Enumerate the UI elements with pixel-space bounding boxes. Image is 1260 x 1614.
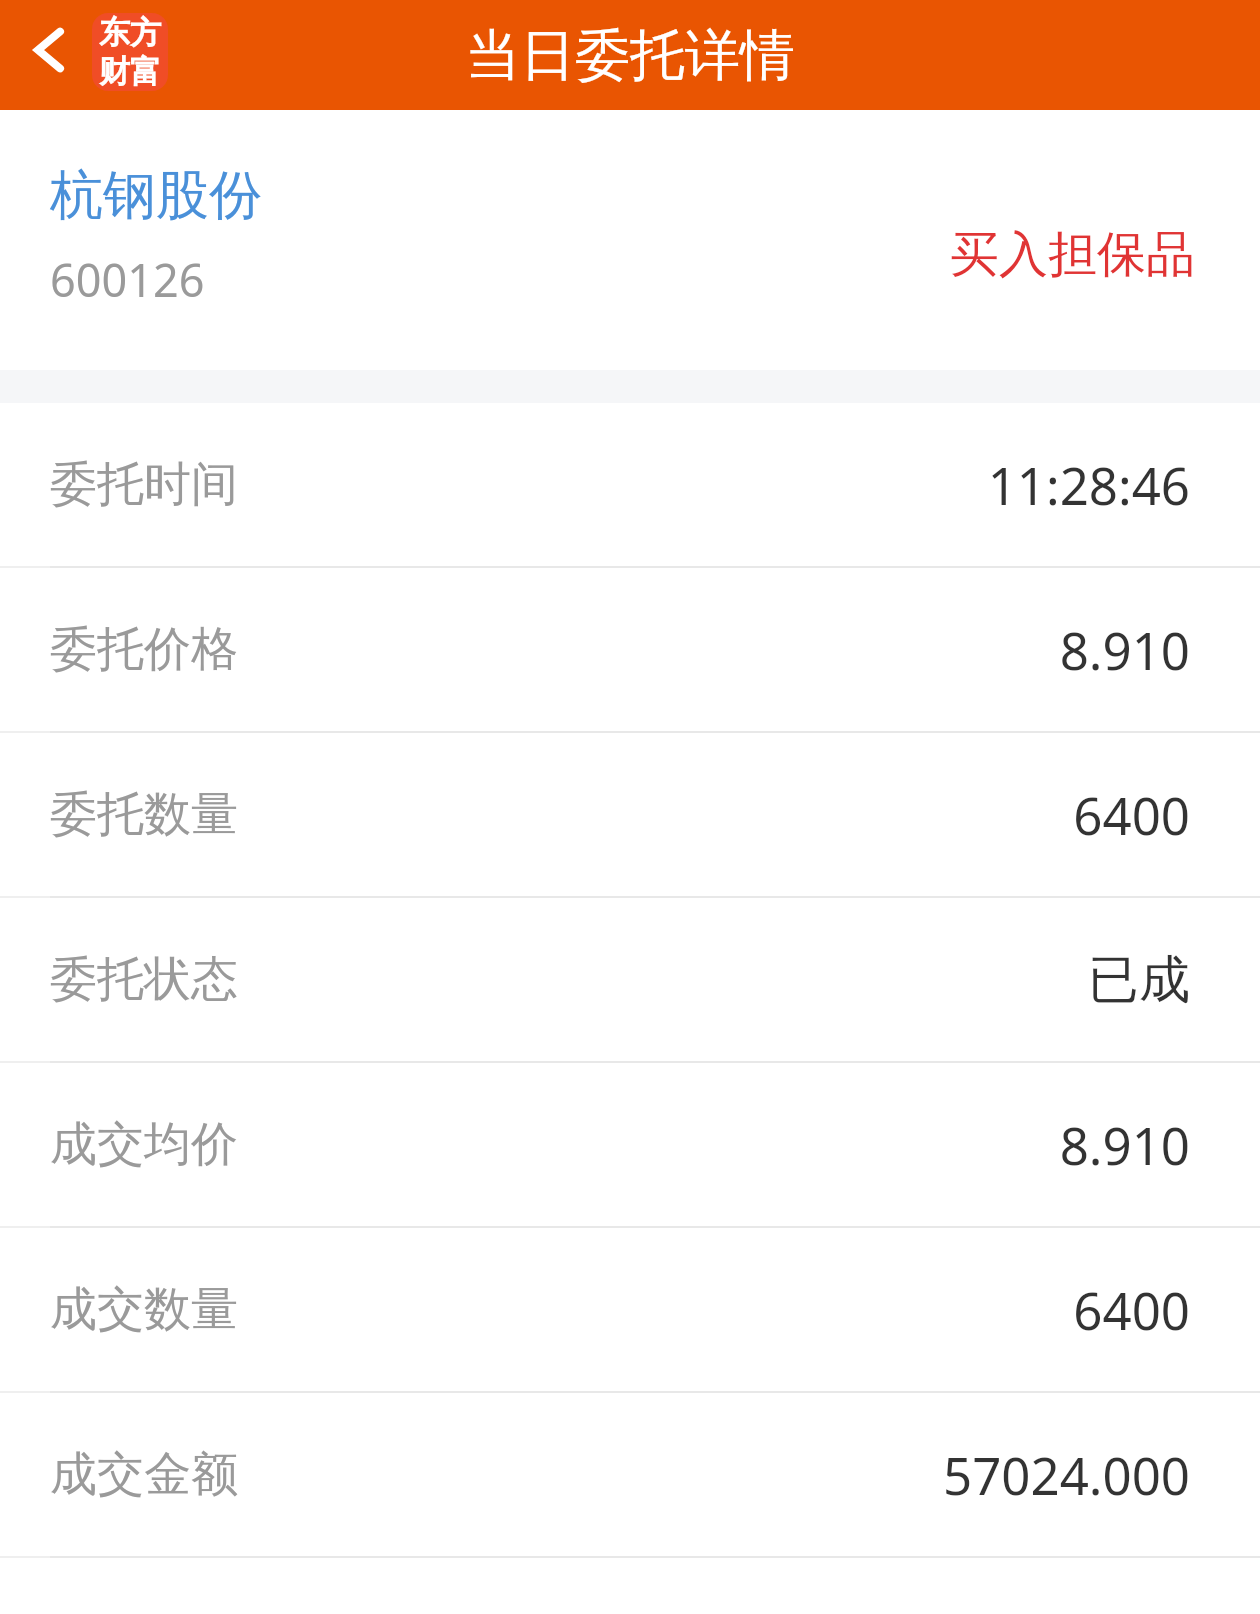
button[interactable]: 杭钢股份 <box>0 110 1260 370</box>
button[interactable]: 委托状态 <box>0 898 1260 1063</box>
button[interactable]: 成交金额 <box>0 1393 1260 1558</box>
staticText: 成交均价 <box>50 1115 238 1174</box>
button[interactable]: 委托价格 <box>0 568 1260 733</box>
button[interactable]: 委托时间 <box>0 403 1260 568</box>
staticText: 当日委托详情 <box>0 21 1260 90</box>
staticText: 600126 <box>50 249 205 310</box>
staticText: 已成 <box>1088 948 1190 1012</box>
staticText: 委托价格 <box>50 620 238 679</box>
button[interactable]: 委托数量 <box>0 733 1260 898</box>
staticText: 委托状态 <box>50 950 238 1009</box>
staticText: 财富 <box>99 52 161 91</box>
staticText: 6400 <box>1073 780 1190 849</box>
button[interactable]: 成交数量 <box>0 1228 1260 1393</box>
staticText: 买入担保品 <box>950 224 1195 286</box>
button[interactable]: Back <box>8 8 92 92</box>
staticText: 成交数量 <box>50 1280 238 1339</box>
staticText: 57024.000 <box>942 1440 1190 1509</box>
staticText: 11:28:46 <box>987 450 1190 519</box>
staticText: 8.910 <box>1059 615 1190 684</box>
staticText: 东方 <box>99 13 161 52</box>
button[interactable]: 成交均价 <box>0 1063 1260 1228</box>
staticText: 委托数量 <box>50 785 238 844</box>
staticText: 6400 <box>1073 1275 1190 1344</box>
staticText: 委托时间 <box>50 455 238 514</box>
staticText: 杭钢股份 <box>50 162 262 229</box>
staticText: 8.910 <box>1059 1110 1190 1179</box>
staticText: 成交金额 <box>50 1445 238 1504</box>
button[interactable]: East Money logo <box>92 13 168 91</box>
